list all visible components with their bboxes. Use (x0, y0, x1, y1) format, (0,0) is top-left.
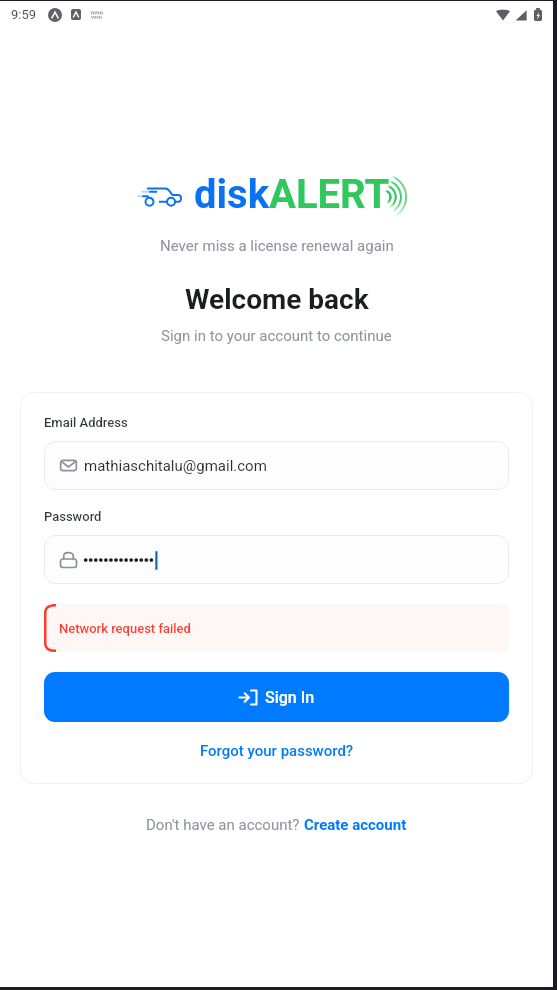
staticText: Password (44, 509, 102, 524)
staticText: mathiaschitalu@gmail.com (84, 457, 267, 475)
staticText: Never miss a license renewal again (160, 237, 394, 255)
staticText: Welcome back (185, 283, 369, 316)
staticText: Network request failed (59, 621, 191, 636)
staticText: Create account (304, 816, 407, 834)
staticText: Don't have an account? (146, 816, 304, 834)
button[interactable]: Sign In (44, 672, 509, 722)
staticText: Sign In (265, 688, 315, 707)
button[interactable]: Don't have an account? (142, 812, 411, 838)
staticText: Sign in to your account to continue (161, 327, 392, 345)
button[interactable]: Forgot your password? (44, 735, 509, 767)
staticText: 9:59 (11, 7, 37, 22)
staticText: Email Address (44, 415, 128, 430)
staticText: diskALERT (194, 171, 390, 218)
button[interactable]: mathiaschitalu@gmail.com (44, 441, 509, 490)
button[interactable] (44, 535, 509, 584)
staticText: Forgot your password? (200, 742, 354, 760)
